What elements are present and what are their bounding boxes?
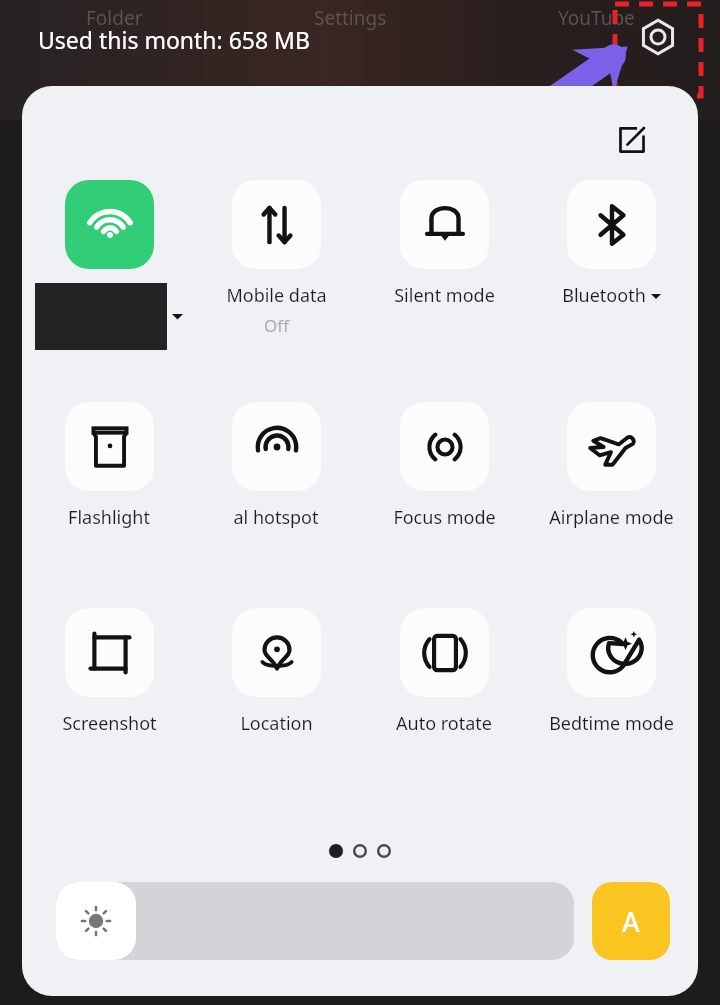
button[interactable]: Brightness (56, 882, 574, 960)
button[interactable]: Auto rotate (369, 608, 519, 736)
staticText: Focus mode (393, 505, 496, 530)
button[interactable]: Silent mode (369, 180, 519, 308)
other: al hotspot (232, 402, 321, 491)
staticText: A (622, 903, 640, 940)
button[interactable]: Bluetooth (536, 180, 686, 308)
button[interactable]: Airplane mode (536, 402, 686, 530)
staticText: Silent mode (394, 283, 495, 308)
button[interactable]: A (592, 882, 670, 960)
staticText: al hotspot (233, 505, 319, 530)
button[interactable]: Settings (636, 15, 680, 59)
other: Bedtime mode (567, 608, 656, 697)
button[interactable]: Focus mode (369, 402, 519, 530)
staticText: Used this month: 658 MB (38, 24, 310, 55)
button[interactable]: Edit (612, 120, 652, 160)
staticText: Auto rotate (396, 711, 492, 736)
staticText: Bedtime mode (549, 711, 674, 736)
staticText: Folder (86, 5, 143, 31)
staticText: Settings (314, 5, 387, 31)
other: Silent mode (400, 180, 489, 269)
other: Focus mode (400, 402, 489, 491)
other: Bluetooth (567, 180, 656, 269)
button[interactable]: Bedtime mode (536, 608, 686, 736)
staticText: Mobile data (226, 283, 327, 308)
staticText: Location (240, 711, 313, 736)
staticText: Airplane mode (549, 505, 674, 530)
staticText: Flashlight (68, 505, 150, 530)
other: Screenshot (65, 608, 154, 697)
other: Airplane mode (567, 402, 656, 491)
staticText: Bluetooth (562, 283, 646, 308)
other: Wi-Fi (65, 180, 154, 269)
staticText: Screenshot (62, 711, 157, 736)
button[interactable]: Wi-Fi (34, 180, 184, 350)
button[interactable]: Location (201, 608, 351, 736)
button[interactable]: al hotspot (201, 402, 351, 530)
other: Mobile data (232, 180, 321, 269)
other: Location (232, 608, 321, 697)
button[interactable]: Screenshot (34, 608, 184, 736)
staticText: YouTube (558, 5, 635, 31)
staticText: Off (264, 314, 289, 337)
other: Flashlight (65, 402, 154, 491)
other: Auto rotate (400, 608, 489, 697)
button[interactable]: Mobile data (201, 180, 351, 337)
button[interactable]: Flashlight (34, 402, 184, 530)
